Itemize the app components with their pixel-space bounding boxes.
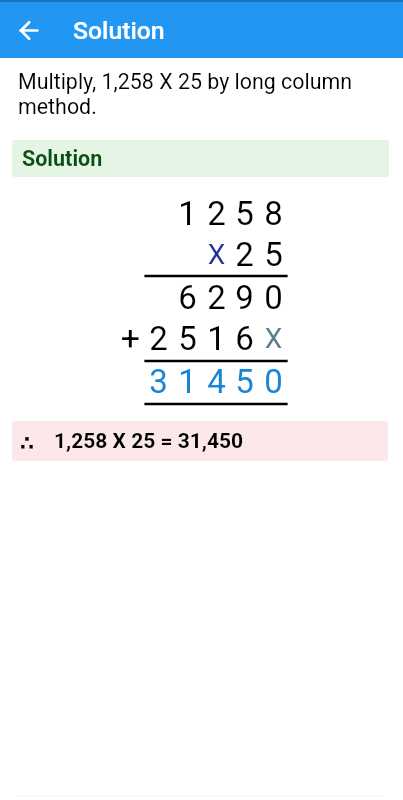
staticText: 5 xyxy=(259,235,288,274)
staticText: ∴ xyxy=(20,431,34,454)
staticText: 0 xyxy=(259,278,288,317)
staticText: 2 xyxy=(144,319,173,358)
staticText: 2 xyxy=(230,235,259,274)
staticText: Solution xyxy=(22,146,103,171)
staticText: 1 xyxy=(202,319,231,358)
staticText: 1,258 X 25 = 31,450 xyxy=(54,429,244,454)
staticText: 2 xyxy=(202,194,231,233)
staticText: 6 xyxy=(173,278,202,317)
staticText: 6 xyxy=(230,319,259,358)
staticText: X xyxy=(259,322,288,355)
staticText: 5 xyxy=(230,194,259,233)
staticText: 9 xyxy=(230,278,259,317)
staticText: 5 xyxy=(173,319,202,358)
staticText: 3 xyxy=(144,362,173,401)
staticText: 2 xyxy=(202,278,231,317)
staticText: 1 xyxy=(173,362,202,401)
staticText: 1 xyxy=(173,194,202,233)
staticText: Solution xyxy=(73,16,165,45)
staticText: 4 xyxy=(202,362,231,401)
button[interactable]: Back xyxy=(9,10,49,50)
staticText: X xyxy=(202,238,231,271)
staticText: 8 xyxy=(259,194,288,233)
staticText: + xyxy=(116,318,145,358)
staticText: Multiply, 1,258 X 25 by long column meth… xyxy=(18,69,389,119)
staticText: 0 xyxy=(259,362,288,401)
staticText: 5 xyxy=(230,362,259,401)
